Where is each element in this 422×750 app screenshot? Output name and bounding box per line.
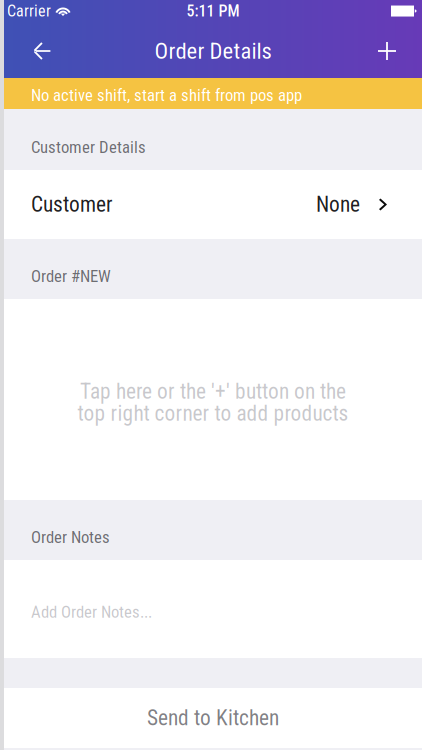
staticText: top right corner to add products bbox=[77, 401, 348, 426]
staticText: 5:11 PM bbox=[186, 2, 239, 20]
button[interactable]: Add Order Notes... bbox=[4, 560, 422, 658]
staticText: Order Details bbox=[154, 38, 271, 64]
button[interactable]: Back bbox=[18, 27, 66, 75]
staticText: No active shift, start a shift from pos … bbox=[31, 85, 302, 105]
staticText: Send to Kitchen bbox=[147, 705, 279, 730]
staticText: Customer Details bbox=[31, 137, 146, 157]
button[interactable]: Add bbox=[363, 27, 411, 75]
button[interactable]: Send to Kitchen bbox=[4, 688, 422, 748]
staticText: Carrier bbox=[7, 2, 51, 20]
staticText: Tap here or the '+' button on the bbox=[80, 379, 346, 404]
staticText: Order #NEW bbox=[31, 266, 111, 286]
staticText: None bbox=[316, 192, 360, 217]
staticText: Customer bbox=[31, 192, 113, 217]
staticText: Add Order Notes... bbox=[31, 602, 152, 622]
button[interactable]: Tap here or the '+' button on the bbox=[4, 299, 422, 500]
staticText: Order Notes bbox=[31, 527, 110, 547]
button[interactable]: Customer bbox=[4, 170, 422, 239]
